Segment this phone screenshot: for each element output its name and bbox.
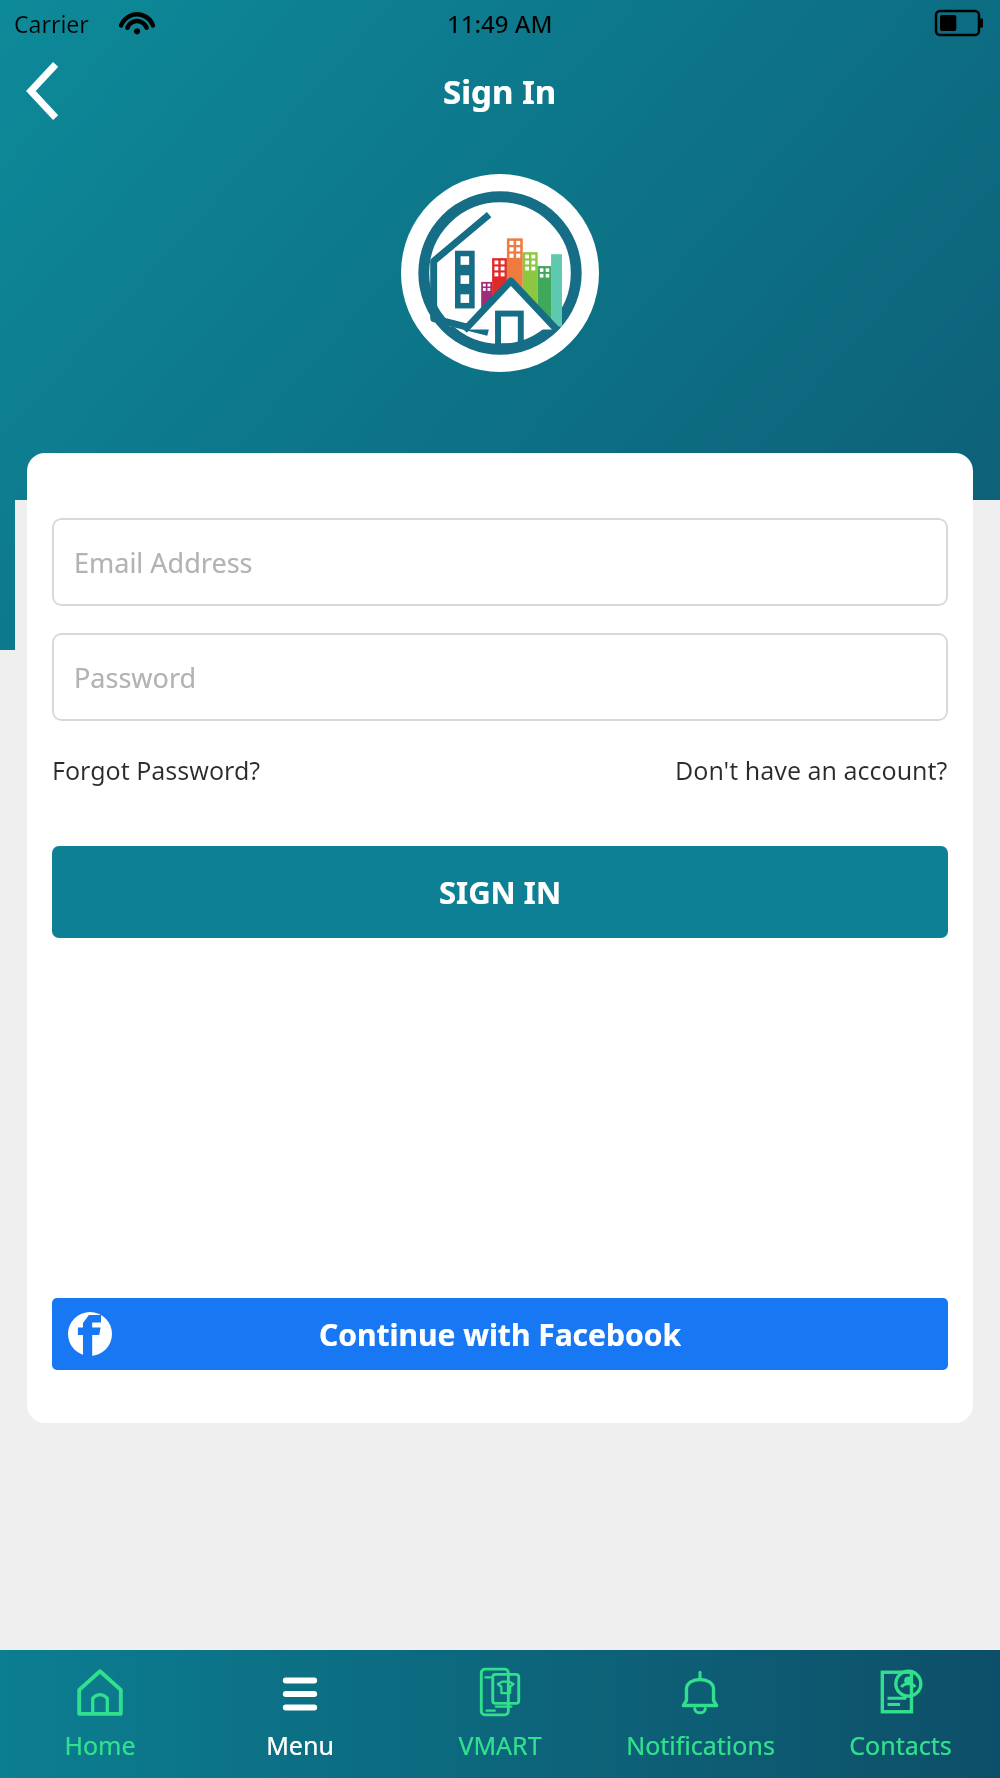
- staticText: Don't have an account?: [675, 753, 948, 787]
- staticText: Contacts: [849, 1728, 952, 1762]
- staticText: Carrier: [14, 8, 89, 39]
- staticText: Email Address: [74, 544, 253, 581]
- button[interactable]: Forgot Password?: [52, 749, 261, 791]
- button[interactable]: Contacts: [800, 1650, 1000, 1778]
- button[interactable]: Password: [52, 633, 948, 721]
- staticText: Sign In: [443, 69, 557, 114]
- button[interactable]: Continue with Facebook: [52, 1298, 948, 1370]
- button[interactable]: VMART: [400, 1650, 600, 1778]
- button[interactable]: Email Address: [52, 518, 948, 606]
- button[interactable]: Don't have an account?: [675, 749, 948, 791]
- staticText: Password: [74, 659, 197, 696]
- staticText: 11:49 AM: [447, 7, 553, 40]
- button[interactable]: SIGN IN: [52, 846, 948, 938]
- staticText: Forgot Password?: [52, 753, 261, 787]
- staticText: Notifications: [626, 1728, 775, 1762]
- staticText: SIGN IN: [439, 871, 562, 913]
- staticText: Menu: [266, 1728, 334, 1762]
- button[interactable]: Home: [0, 1650, 200, 1778]
- staticText: Continue with Facebook: [319, 1314, 682, 1355]
- button[interactable]: Back: [10, 58, 76, 124]
- staticText: VMART: [458, 1728, 542, 1762]
- staticText: Home: [64, 1728, 136, 1762]
- button[interactable]: Menu: [200, 1650, 400, 1778]
- button[interactable]: Notifications: [600, 1650, 800, 1778]
